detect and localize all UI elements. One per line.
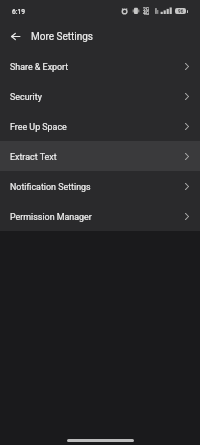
button[interactable]: Notification Settings: [0, 171, 200, 201]
staticText: Security: [10, 92, 42, 102]
staticText: Permission Manager: [10, 212, 92, 222]
staticText: Notification Settings: [10, 182, 91, 192]
button[interactable]: Permission Manager: [0, 201, 200, 231]
staticText: Extract Text: [10, 152, 57, 162]
staticText: 2G: [143, 6, 150, 12]
staticText: More Settings: [31, 31, 94, 43]
button[interactable]: Extract Text: [0, 141, 200, 171]
staticText: 96: [178, 9, 184, 14]
button[interactable]: Back: [0, 21, 31, 51]
staticText: 6:19: [12, 8, 25, 16]
staticText: Share & Export: [10, 62, 69, 72]
button[interactable]: Free Up Space: [0, 111, 200, 141]
button[interactable]: Security: [0, 81, 200, 111]
staticText: Free Up Space: [10, 122, 67, 132]
staticText: 4G: [143, 10, 150, 16]
button[interactable]: Share & Export: [0, 51, 200, 81]
